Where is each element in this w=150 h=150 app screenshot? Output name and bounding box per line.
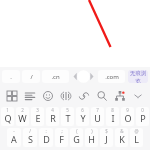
staticText: 1 [6,107,9,113]
staticText: 7 [96,107,99,113]
button[interactable]: @ [130,128,143,147]
button[interactable]: Hide keyboard [129,86,147,106]
staticText: 9 [126,107,129,113]
button[interactable]: 1 [1,107,14,126]
staticText: : [45,128,47,134]
staticText: R [50,112,56,124]
button[interactable]: / [23,128,37,147]
button[interactable]: 8 [106,107,119,126]
button[interactable]: .cn [42,70,69,83]
staticText: $ [105,128,108,134]
staticText: Y [80,112,86,124]
button[interactable]: 5 [61,107,74,126]
staticText: - [13,128,15,134]
staticText: 5 [66,107,69,113]
staticText: / [29,128,31,134]
staticText: 0 [141,107,144,113]
staticText: U [94,112,101,124]
staticText: G [73,133,80,145]
staticText: Q [4,112,12,124]
button[interactable]: 2 [16,107,29,126]
staticText: F [59,133,64,145]
staticText: L [134,133,139,145]
staticText: ) [91,128,93,134]
staticText: T [65,112,71,124]
staticText: & [120,128,124,134]
staticText: @ [134,128,139,134]
button[interactable]: Voice input [57,86,75,106]
button[interactable]: 7 [91,107,104,126]
staticText: .cn [51,73,60,81]
button[interactable]: Move cursor [71,67,96,86]
button[interactable]: 9 [121,107,134,126]
button[interactable]: : [39,128,53,147]
button[interactable]: 无痕浏览 [128,70,148,83]
staticText: I [111,112,115,124]
staticText: E [35,112,41,124]
staticText: O [124,112,132,124]
staticText: H [88,133,95,145]
button[interactable]: - [7,128,21,147]
button[interactable]: 3 [31,107,44,126]
button[interactable]: Clipboard [21,86,39,106]
button[interactable]: ; [55,128,68,147]
staticText: 6 [81,107,84,113]
button[interactable]: & [115,128,128,147]
button[interactable]: $ [100,128,113,147]
button[interactable]: Attach [75,86,93,106]
staticText: D [43,133,50,145]
staticText: J [105,133,108,145]
button[interactable]: 4 [46,107,59,126]
staticText: ; [61,128,63,134]
button[interactable]: Emoji [39,86,57,106]
staticText: W [18,112,27,124]
button[interactable]: More tools [111,86,129,106]
staticText: / [30,73,33,81]
staticText: 无痕浏览 [128,70,148,83]
button[interactable]: .com [98,70,125,83]
button[interactable]: Keyboard layouts [3,86,21,106]
staticText: 4 [51,107,54,113]
staticText: S [28,133,33,145]
staticText: P [140,112,146,124]
staticText: 2 [21,107,24,113]
button[interactable]: / [22,70,40,83]
button[interactable]: 0 [136,107,149,126]
staticText: .com [105,73,119,81]
staticText: 8 [111,107,114,113]
staticText: . [10,73,12,81]
button[interactable]: 6 [76,107,89,126]
staticText: A [11,133,17,145]
staticText: K [119,133,125,145]
button[interactable]: ( [70,128,83,147]
staticText: 3 [36,107,39,113]
button[interactable]: Search [93,86,111,106]
staticText: ( [76,128,78,134]
button[interactable]: . [2,70,20,83]
button[interactable]: ) [85,128,98,147]
